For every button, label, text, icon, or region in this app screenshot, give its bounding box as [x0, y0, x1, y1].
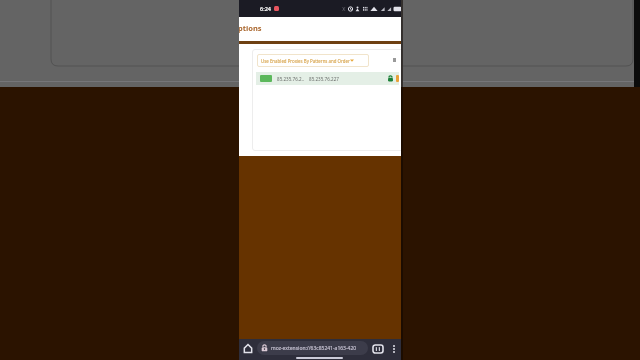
- staticText: Use Enabled Proxies By Patterns and Orde…: [261, 58, 350, 64]
- staticText: 6:24: [260, 5, 271, 12]
- staticText: moz-extension://63c85241-a163-420: [271, 345, 357, 352]
- staticText: ptions: [239, 23, 262, 33]
- button[interactable]: moz-extension://63c85241-a163-420: [257, 341, 368, 355]
- button[interactable]: Open tabs: [369, 340, 387, 357]
- button[interactable]: 85.235.76.2..: [256, 72, 399, 85]
- button[interactable]: Use Enabled Proxies By Patterns and Orde…: [257, 54, 369, 67]
- button[interactable]: Home: [240, 340, 256, 357]
- staticText: 85.235.76.2..: [277, 76, 305, 82]
- button[interactable]: More options: [387, 340, 400, 357]
- staticText: 85.235.76.227: [309, 76, 339, 82]
